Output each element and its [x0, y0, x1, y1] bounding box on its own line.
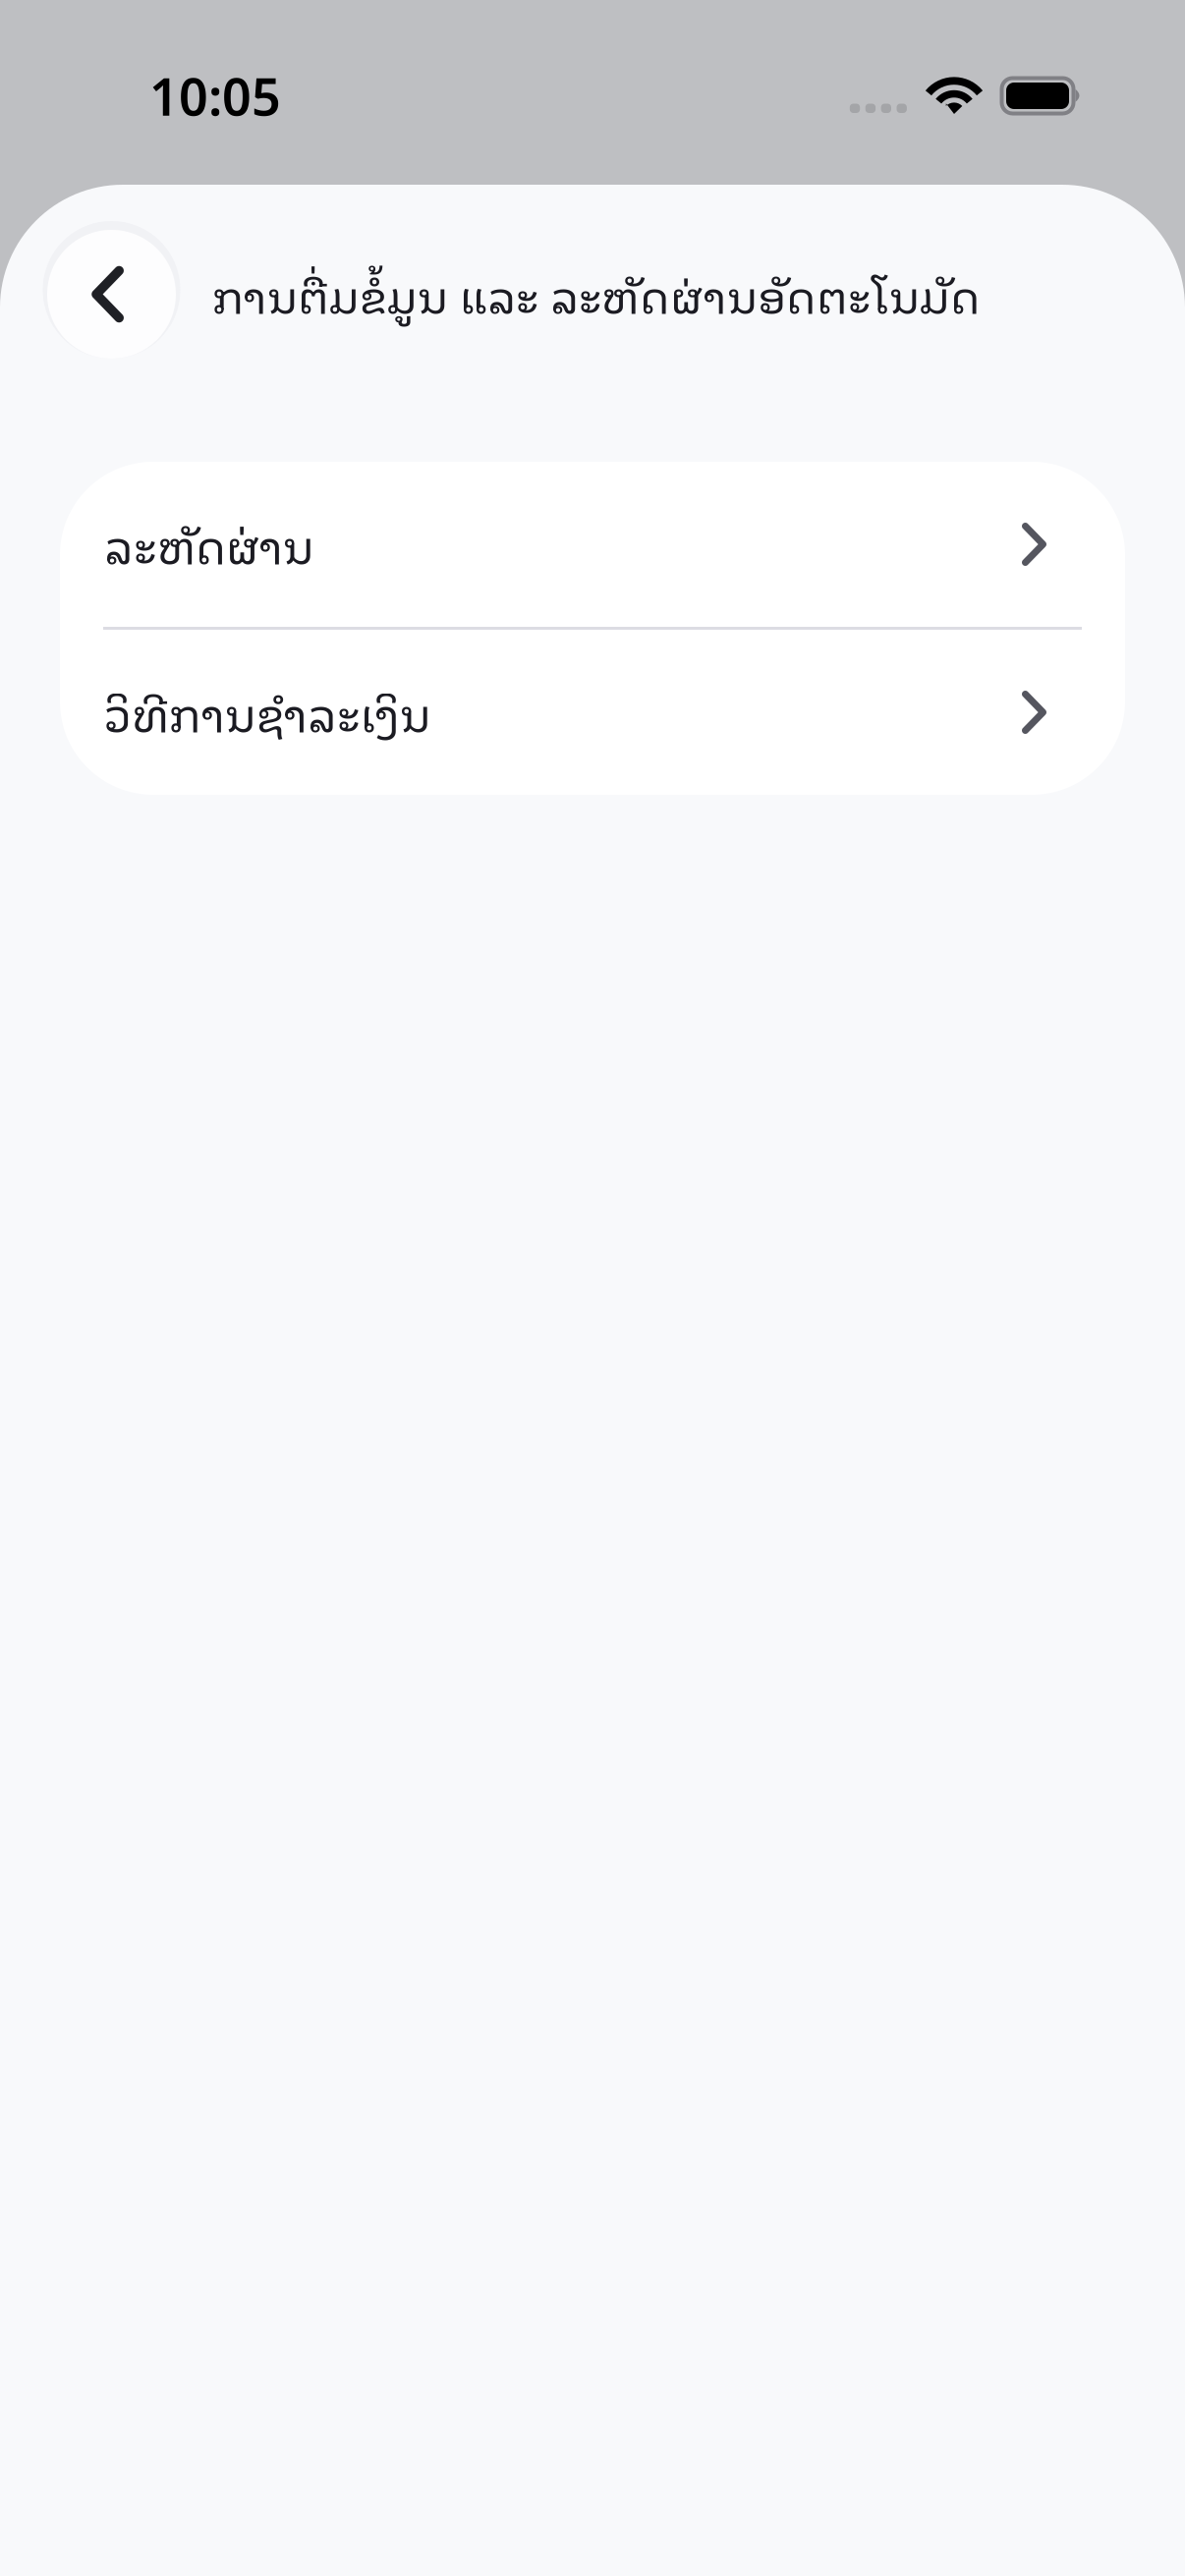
- button[interactable]: Back: [47, 230, 176, 359]
- staticText: ລະຫັດຜ່ານ: [104, 509, 314, 580]
- button[interactable]: ວິທີການຊຳລະເງິນ: [60, 630, 1125, 795]
- staticText: ວິທີການຊຳລະເງິນ: [104, 677, 431, 748]
- staticText: ການຕື່ມຂໍ້ມູນ ແລະ ລະຫັດຜ່ານອັດຕະໂນມັດ: [212, 259, 981, 329]
- button[interactable]: ລະຫັດຜ່ານ: [60, 462, 1125, 627]
- staticText: 10:05: [149, 62, 281, 130]
